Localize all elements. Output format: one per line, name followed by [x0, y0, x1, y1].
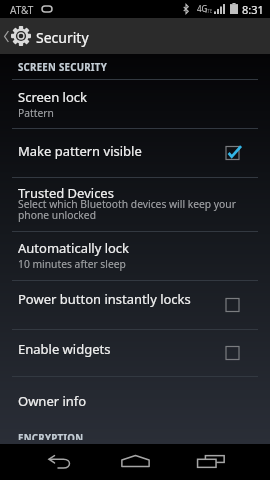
- button[interactable]: Make pattern visible: [0, 129, 270, 177]
- staticText: Enable widgets: [18, 340, 111, 358]
- staticText: Screen lock: [18, 88, 87, 106]
- staticText: 10 minutes after sleep: [18, 257, 126, 271]
- staticText: ENCRYPTION: [18, 432, 84, 440]
- staticText: Automatically lock: [18, 239, 130, 257]
- staticText: Power button instantly locks: [18, 290, 191, 308]
- staticText: 4G: [197, 3, 208, 14]
- staticText: Select which Bluetooth devices will keep…: [18, 197, 236, 222]
- button[interactable]: Back: [35, 444, 84, 480]
- staticText: Trusted Devices: [18, 184, 114, 202]
- staticText: Security: [36, 28, 89, 47]
- button[interactable]: Navigate up, Security: [0, 18, 270, 54]
- button[interactable]: Automatically lock: [0, 232, 270, 280]
- staticText: Make pattern visible: [18, 142, 142, 160]
- staticText: AT&T: [10, 3, 34, 17]
- button[interactable]: Power button instantly locks: [0, 281, 270, 329]
- staticText: Owner info: [18, 392, 87, 410]
- staticText: SCREEN SECURITY: [18, 61, 107, 74]
- staticText: Pattern: [18, 106, 54, 120]
- button[interactable]: Screen lock: [0, 80, 270, 128]
- button[interactable]: Trusted Devices: [0, 178, 270, 231]
- staticText: 8:31: [242, 2, 264, 17]
- button[interactable]: Owner info: [0, 377, 270, 426]
- staticText: LTE: [205, 8, 213, 14]
- button[interactable]: Home: [111, 444, 160, 480]
- button[interactable]: Enable widgets: [0, 330, 270, 376]
- button[interactable]: Recent apps: [187, 444, 236, 480]
